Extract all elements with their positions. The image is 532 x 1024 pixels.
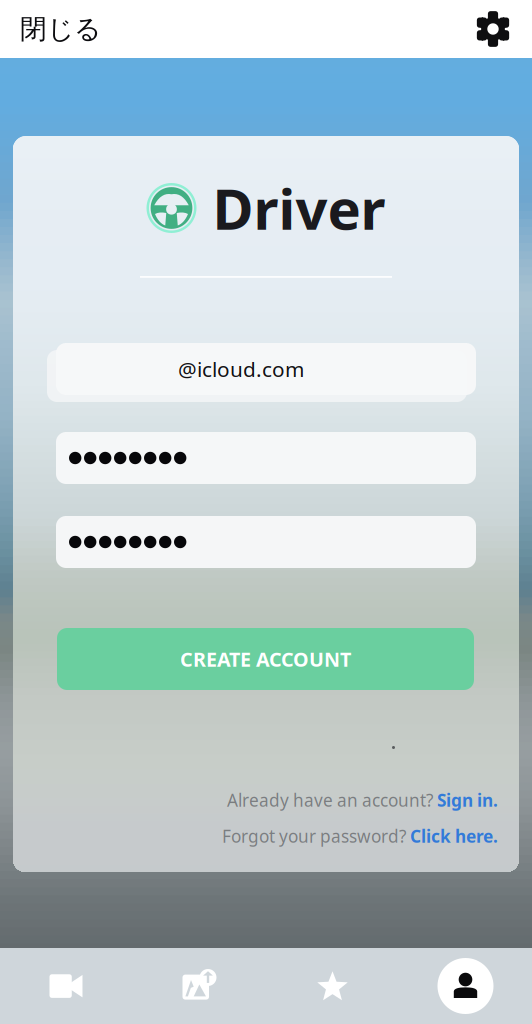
button[interactable]: Upload (133, 948, 266, 1024)
staticText: Already have an account? (227, 788, 437, 812)
button[interactable]: Profile (399, 948, 532, 1024)
staticText: 閉じる (20, 12, 101, 46)
staticText: Driver (212, 170, 385, 246)
staticText: Sign in. (437, 788, 498, 812)
staticText: Click here. (410, 824, 498, 848)
button[interactable]: Sign in. (437, 788, 498, 812)
staticText: Forgot your password? (222, 824, 410, 848)
button[interactable]: Click here. (410, 824, 498, 848)
button[interactable]: Record (0, 948, 133, 1024)
staticText: CREATE ACCOUNT (180, 646, 351, 672)
button[interactable]: CREATE ACCOUNT (57, 628, 474, 690)
staticText: @icloud.com (178, 355, 304, 383)
button[interactable]: Settings (476, 0, 532, 58)
button[interactable]: Favourites (266, 948, 399, 1024)
button[interactable]: 閉じる (0, 0, 101, 61)
